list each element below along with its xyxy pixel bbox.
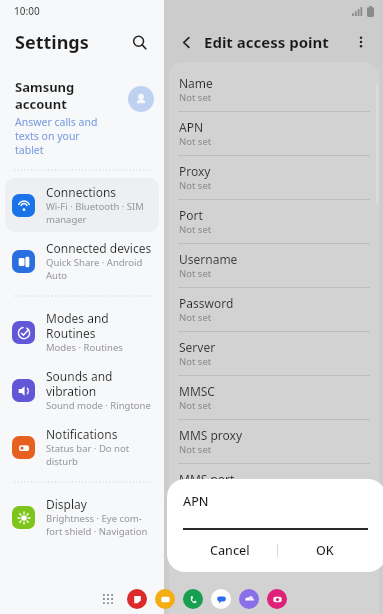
button[interactable]: Username (169, 243, 379, 287)
staticText: Name (179, 75, 213, 91)
button[interactable]: App (267, 589, 287, 609)
staticText: Samsung account (15, 78, 75, 113)
button[interactable]: Notifications (5, 420, 159, 474)
button[interactable]: Cancel (183, 537, 277, 564)
staticText: Modes and Routines (46, 310, 109, 341)
button[interactable]: Password (169, 287, 379, 331)
staticText: Not set (179, 179, 212, 192)
staticText: Modes · Routines (46, 341, 123, 354)
button[interactable]: APN (169, 111, 379, 155)
button[interactable]: Connections (5, 178, 159, 232)
staticText: Not set (179, 399, 212, 412)
staticText: Edit access point (204, 32, 329, 52)
staticText: Sound mode · Ringtone (46, 399, 151, 412)
button[interactable]: MMS port (169, 463, 379, 507)
staticText: MMSC (179, 383, 215, 399)
staticText: Not set (179, 443, 212, 456)
staticText: Brightness · Eye com- fort shield · Navi… (46, 512, 148, 538)
button[interactable]: Samsung account (0, 76, 164, 163)
button[interactable]: MMS proxy (169, 419, 379, 463)
button[interactable]: Proxy (169, 155, 379, 199)
staticText: APN (183, 493, 209, 510)
staticText: Not set (179, 135, 212, 148)
button[interactable]: Port (169, 199, 379, 243)
staticText: Answer calls and texts on your tablet (15, 115, 98, 157)
staticText: Proxy (179, 163, 211, 179)
staticText: Settings (15, 30, 89, 55)
staticText: Port (179, 207, 203, 223)
staticText: APN (179, 119, 204, 135)
staticText: MMS port (179, 471, 235, 487)
button[interactable]: Server (169, 331, 379, 375)
staticText: Username (179, 251, 238, 267)
button[interactable]: Sounds and vibration (5, 362, 159, 418)
button[interactable]: Back (173, 29, 199, 55)
button[interactable]: App (183, 589, 203, 609)
staticText: MMS proxy (179, 427, 243, 443)
staticText: Connected devices (46, 240, 152, 256)
staticText: Cancel (210, 542, 250, 559)
button[interactable]: Search (126, 29, 152, 55)
button[interactable]: MMSC (169, 375, 379, 419)
button[interactable]: App (239, 589, 259, 609)
staticText: OK (316, 542, 334, 559)
staticText: Not set (179, 355, 212, 368)
staticText: Display (46, 496, 87, 512)
staticText: Not set (179, 487, 212, 500)
staticText: Server (179, 339, 216, 355)
button[interactable]: App (127, 589, 147, 609)
staticText: Status bar · Do not disturb (46, 442, 130, 468)
button[interactable]: Apps (97, 588, 119, 610)
staticText: 10:00 (14, 4, 40, 18)
staticText: Quick Share · Android Auto (46, 256, 143, 282)
staticText: Password (179, 295, 234, 311)
staticText: Not set (179, 223, 212, 236)
button[interactable]: OK (278, 537, 372, 564)
button[interactable]: Modes and Routines (5, 304, 159, 360)
staticText: Sounds and vibration (46, 368, 113, 399)
staticText: Not set (179, 311, 212, 324)
staticText: Not set (179, 91, 212, 104)
staticText: Not set (179, 267, 212, 280)
button[interactable]: Name (169, 68, 379, 111)
staticText: Connections (46, 184, 117, 200)
staticText: Notifications (46, 426, 118, 442)
button[interactable]: Connected devices (5, 234, 159, 288)
staticText: Wi-Fi · Bluetooth · SIM manager (46, 200, 144, 226)
button[interactable]: App (155, 589, 175, 609)
button[interactable]: App (211, 589, 231, 609)
button[interactable]: More options (348, 29, 374, 55)
button[interactable]: Display (5, 490, 159, 544)
